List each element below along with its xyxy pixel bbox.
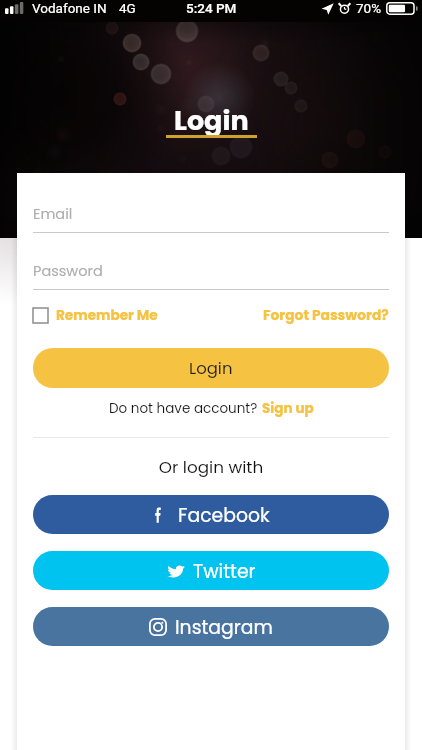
button[interactable]: Remember Me bbox=[33, 306, 158, 325]
staticText: Login bbox=[189, 357, 233, 380]
staticText: Twitter bbox=[193, 558, 256, 584]
button[interactable]: Instagram bbox=[33, 607, 389, 646]
staticText: 5:24 PM bbox=[186, 0, 237, 16]
staticText: 4G bbox=[119, 0, 136, 16]
button[interactable]: Facebook bbox=[33, 495, 389, 534]
staticText: Login bbox=[174, 102, 249, 140]
staticText: Instagram bbox=[175, 614, 273, 640]
staticText: Or login with bbox=[33, 455, 389, 479]
staticText: Vodafone IN bbox=[32, 0, 107, 16]
other: Signal strength bbox=[5, 2, 24, 14]
other: Location bbox=[321, 2, 334, 15]
staticText: Email bbox=[33, 204, 73, 224]
staticText: Password bbox=[33, 261, 103, 281]
other: Alarm bbox=[339, 2, 350, 14]
staticText: Do not have account? bbox=[109, 399, 258, 418]
staticText: 70% bbox=[356, 0, 382, 16]
button[interactable]: Forgot Password? bbox=[263, 306, 389, 325]
other: Battery 70 percent bbox=[386, 2, 418, 15]
button[interactable]: Login bbox=[33, 348, 389, 388]
staticText: Facebook bbox=[178, 502, 270, 528]
button[interactable]: Sign up bbox=[262, 399, 314, 418]
button[interactable]: Twitter bbox=[33, 551, 389, 590]
staticText: Remember Me bbox=[56, 306, 158, 325]
